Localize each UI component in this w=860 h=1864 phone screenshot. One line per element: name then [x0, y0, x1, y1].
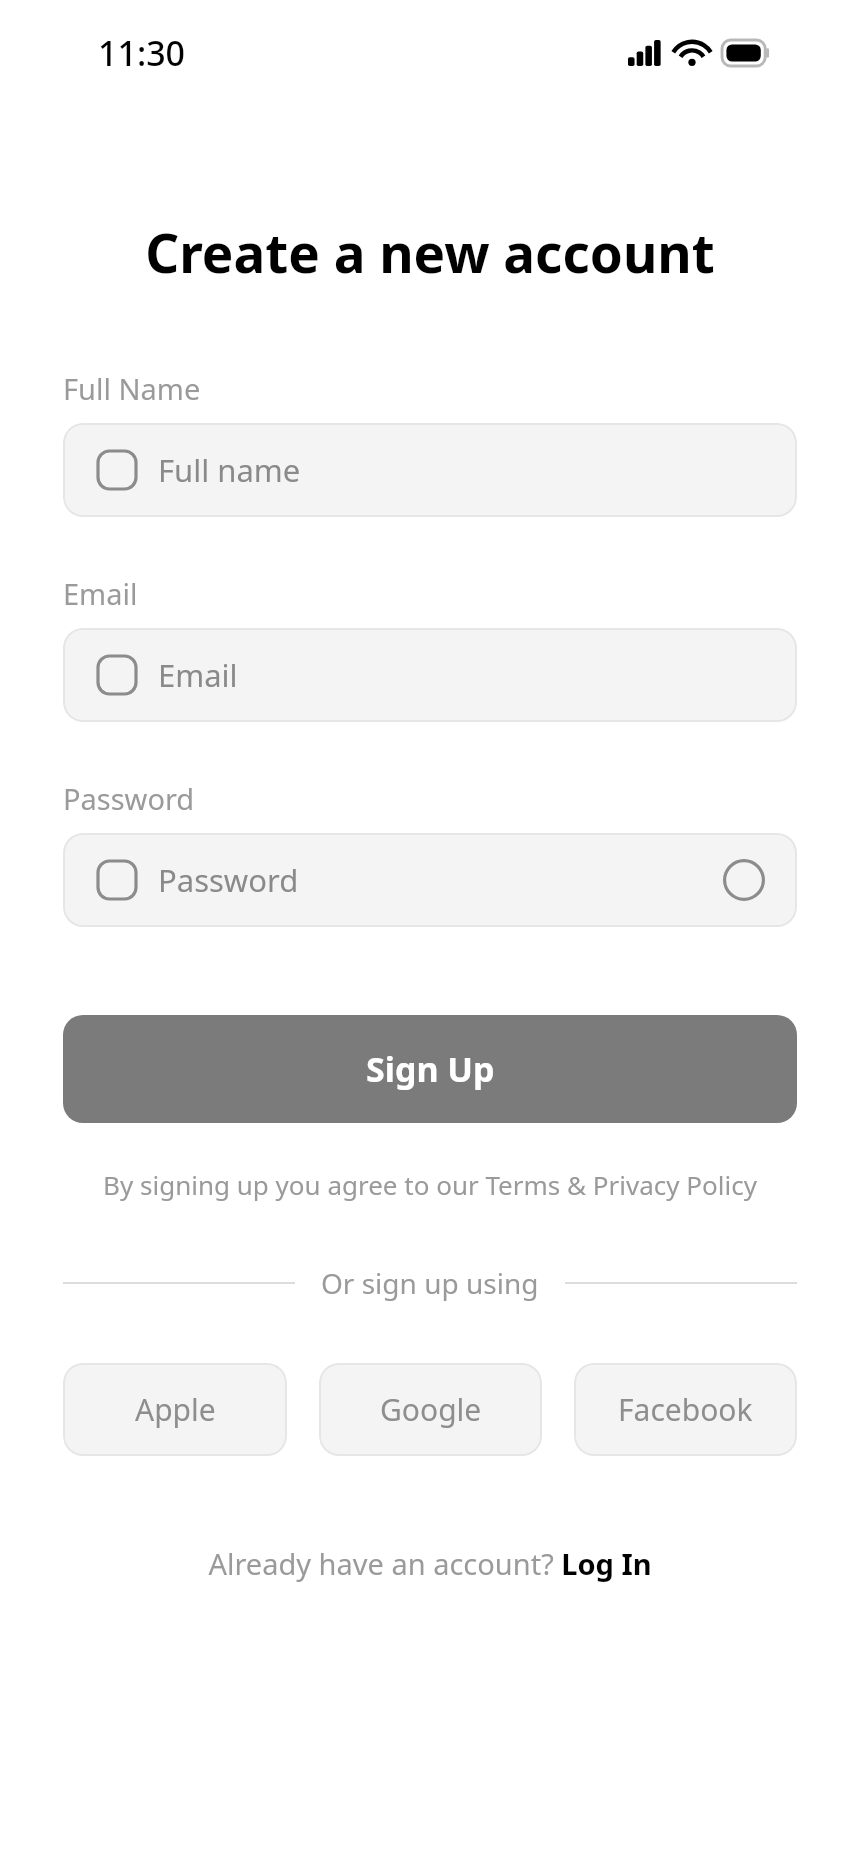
- staticText: Apple: [135, 1389, 216, 1430]
- staticText: By signing up you agree to our Terms & P…: [63, 1167, 797, 1202]
- staticText: Sign Up: [366, 1046, 495, 1092]
- button[interactable]: Password: [63, 833, 797, 927]
- staticText: Create a new account: [0, 216, 860, 288]
- staticText: 11:30: [98, 30, 186, 76]
- button[interactable]: Facebook: [574, 1363, 797, 1456]
- button[interactable]: Full name: [63, 423, 797, 517]
- staticText: Full name: [158, 449, 301, 491]
- staticText: Google: [380, 1389, 482, 1430]
- other: Show password: [723, 859, 765, 901]
- staticText: Password: [63, 779, 195, 818]
- staticText: Email: [158, 654, 238, 696]
- staticText: Password: [158, 859, 299, 901]
- staticText: Facebook: [618, 1389, 753, 1430]
- staticText: Email: [63, 574, 138, 613]
- button[interactable]: Already have an account? Log In: [208, 1544, 652, 1583]
- button[interactable]: Email: [63, 628, 797, 722]
- button[interactable]: Google: [319, 1363, 542, 1456]
- button[interactable]: Apple: [63, 1363, 287, 1456]
- button[interactable]: Sign Up: [63, 1015, 797, 1123]
- staticText: Full Name: [63, 369, 201, 408]
- staticText: Or sign up using: [321, 1264, 539, 1302]
